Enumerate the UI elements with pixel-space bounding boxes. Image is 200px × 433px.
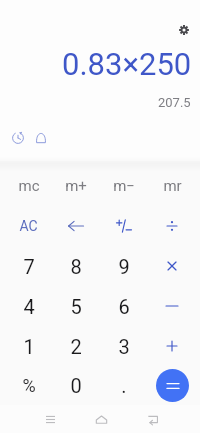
button[interactable]: Equals <box>156 369 189 402</box>
staticText: 207.5 <box>158 95 191 110</box>
button[interactable]: 0 <box>52 366 100 405</box>
button[interactable]: Minus <box>148 286 196 326</box>
button[interactable]: m− <box>100 166 148 206</box>
staticText: 1 <box>23 335 35 358</box>
button[interactable]: Multiply <box>148 246 196 286</box>
button[interactable]: Back <box>140 405 164 433</box>
button[interactable]: 9 <box>100 246 148 286</box>
button[interactable]: History <box>7 127 29 149</box>
staticText: mr <box>163 177 182 195</box>
staticText: 2 <box>70 335 82 358</box>
button[interactable]: 8 <box>52 246 100 286</box>
staticText: . <box>121 374 127 397</box>
staticText: 9 <box>118 255 130 278</box>
staticText: m+ <box>65 177 87 195</box>
button[interactable]: Backspace <box>52 206 100 246</box>
button[interactable]: . <box>100 366 148 405</box>
staticText: m− <box>113 177 135 195</box>
button[interactable]: Settings <box>173 19 195 41</box>
staticText: 7 <box>23 255 35 278</box>
button[interactable]: 5 <box>52 286 100 326</box>
button[interactable]: Recents <box>38 405 62 433</box>
button[interactable]: 1 <box>5 326 52 366</box>
staticText: 6 <box>118 295 130 318</box>
button[interactable]: Plus <box>148 326 196 366</box>
button[interactable]: 6 <box>100 286 148 326</box>
button[interactable]: 3 <box>100 326 148 366</box>
staticText: 8 <box>70 255 82 278</box>
staticText: % <box>22 375 36 396</box>
button[interactable]: AC <box>5 206 52 246</box>
staticText: 4 <box>23 295 35 318</box>
staticText: 0.83×250 <box>62 46 192 82</box>
button[interactable]: 4 <box>5 286 52 326</box>
staticText: 3 <box>118 335 130 358</box>
staticText: 5 <box>70 295 82 318</box>
staticText: mc <box>18 177 40 195</box>
button[interactable]: Divide <box>148 206 196 246</box>
staticText: AC <box>19 218 38 234</box>
button[interactable]: mr <box>148 166 196 206</box>
button[interactable]: m+ <box>52 166 100 206</box>
button[interactable]: Home <box>89 405 113 433</box>
staticText: 0 <box>70 374 82 397</box>
button[interactable]: 7 <box>5 246 52 286</box>
button[interactable]: Functions <box>30 127 52 149</box>
button[interactable]: Plus minus <box>100 206 148 246</box>
button[interactable]: mc <box>5 166 52 206</box>
button[interactable]: % <box>5 366 52 405</box>
button[interactable]: 2 <box>52 326 100 366</box>
